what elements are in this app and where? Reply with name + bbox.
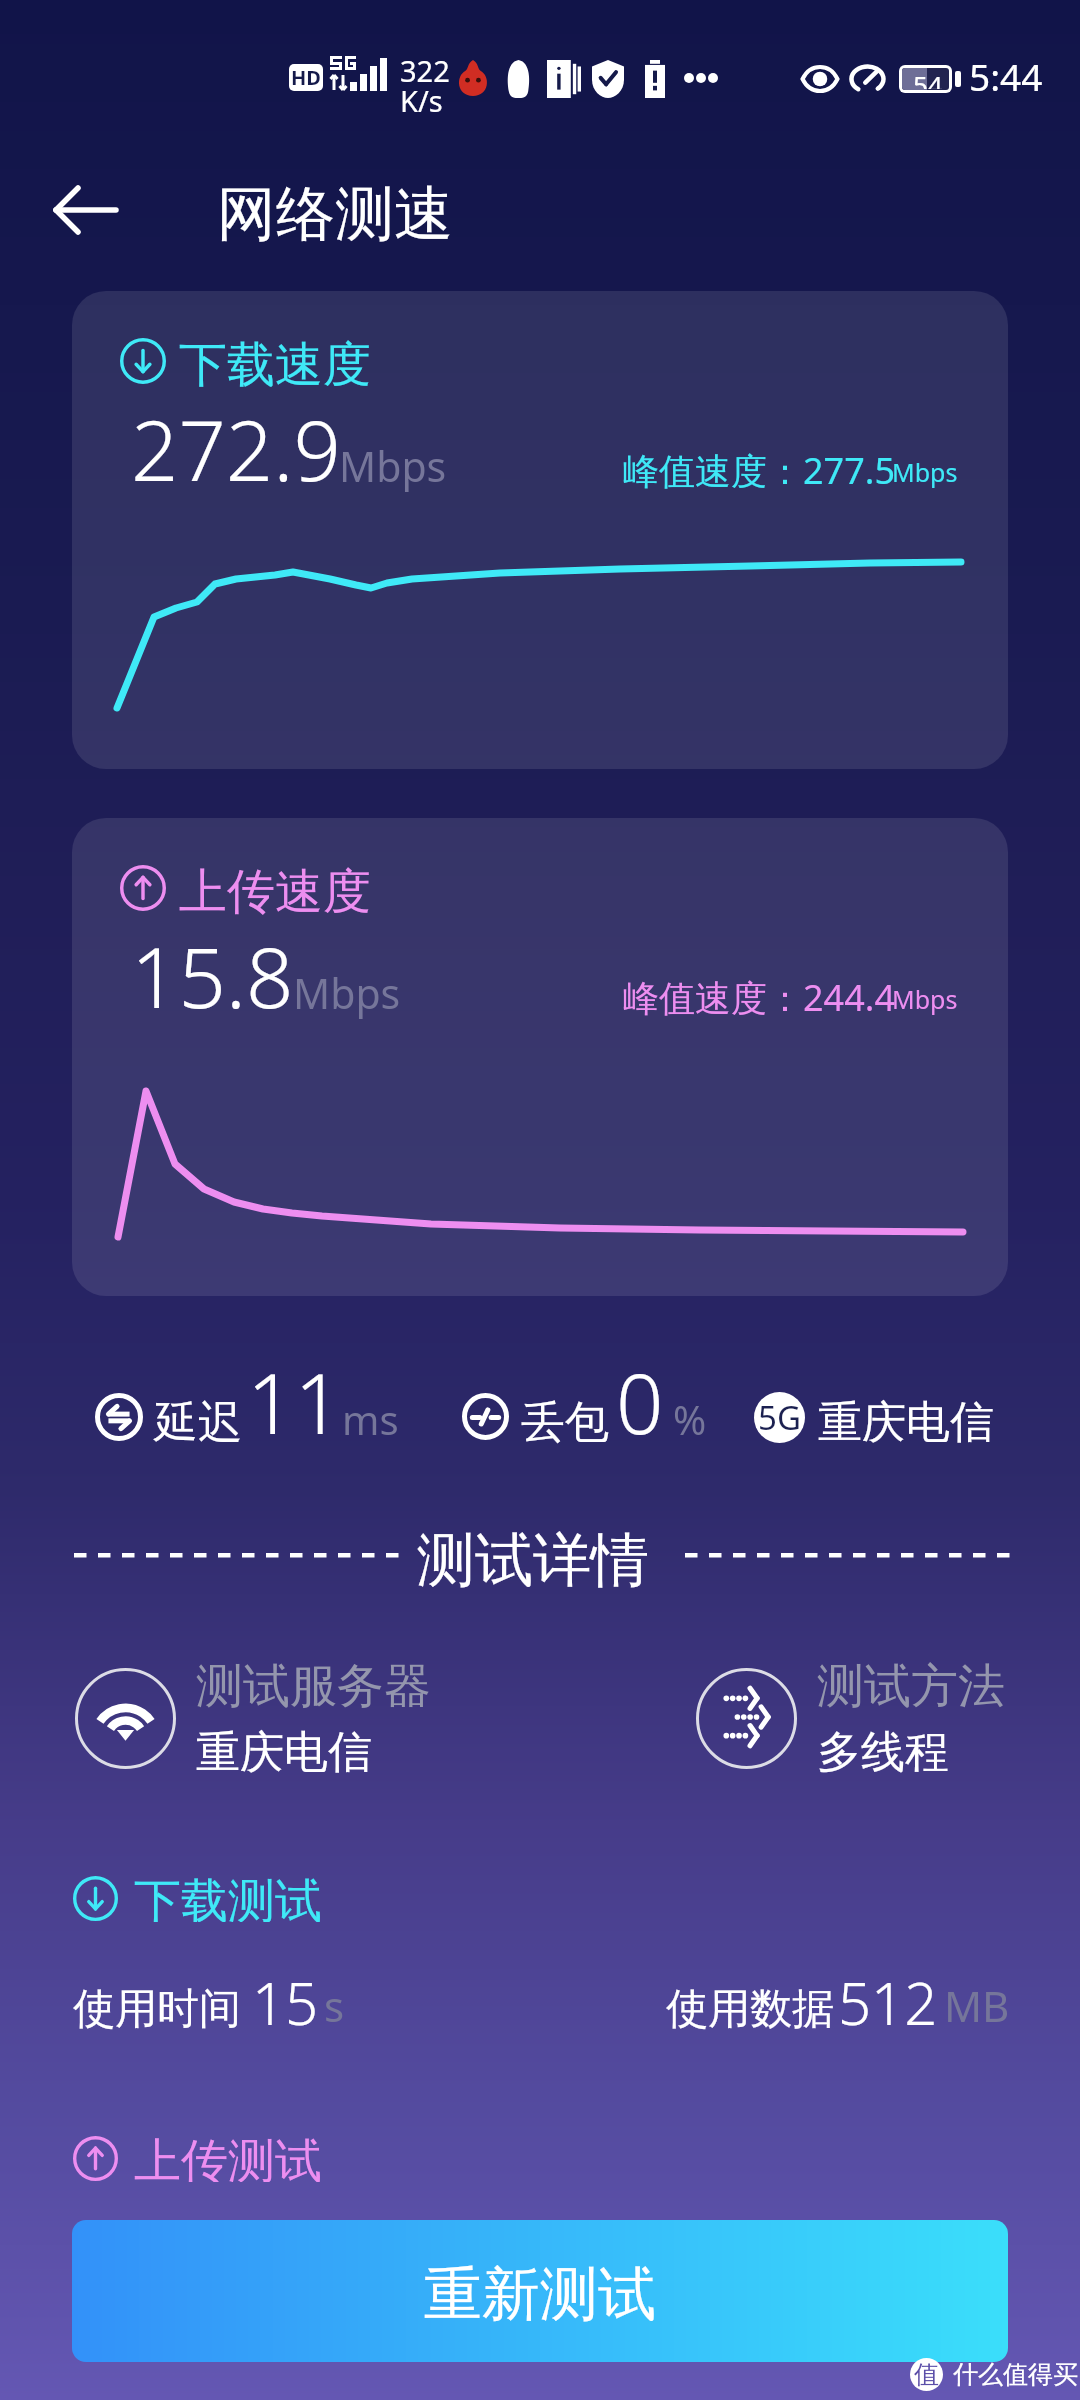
button[interactable]: 测试方法 xyxy=(696,1657,1005,1780)
staticText: 322 xyxy=(400,51,450,90)
button[interactable]: Back xyxy=(48,172,124,248)
staticText: MB xyxy=(944,1977,1010,2034)
staticText: 5:44 xyxy=(969,51,1043,101)
staticText: 测试详情 xyxy=(417,1524,649,1597)
staticText: % xyxy=(673,1392,707,1446)
staticText: 重庆电信 xyxy=(196,1725,372,1780)
staticText: Mbps xyxy=(293,965,401,1021)
button[interactable]: 上传速度 xyxy=(72,818,1008,1296)
staticText: 使用数据 xyxy=(666,1983,834,2036)
staticText: 15.8 xyxy=(131,919,294,1032)
staticText: 512 xyxy=(838,1963,938,2042)
staticText: Mbps xyxy=(892,455,958,489)
button[interactable]: 上传测试 xyxy=(73,2133,322,2183)
staticText: K/s xyxy=(400,81,443,120)
staticText: 上传速度 xyxy=(179,862,371,922)
staticText: 下载测试 xyxy=(134,1872,322,1922)
staticText: 重庆电信 xyxy=(818,1395,994,1450)
staticText: 下载速度 xyxy=(179,335,371,395)
staticText: 0 xyxy=(616,1345,664,1458)
staticText: 多线程 xyxy=(817,1725,949,1780)
staticText: 丢包 xyxy=(521,1395,609,1450)
staticText: 272.9 xyxy=(131,392,341,505)
staticText: ms xyxy=(342,1392,399,1446)
staticText: 峰值速度：277.5 xyxy=(623,446,896,495)
staticText: HD xyxy=(291,64,321,91)
staticText: 测试服务器 xyxy=(196,1657,431,1716)
button[interactable]: 测试服务器 xyxy=(75,1657,431,1780)
staticText: 重新测试 xyxy=(424,2258,656,2331)
button[interactable]: 重新测试 xyxy=(72,2220,1008,2362)
staticText: 网络测速 xyxy=(217,177,453,251)
staticText: 峰值速度：244.4 xyxy=(623,973,896,1022)
button[interactable]: 下载测试 xyxy=(73,1873,322,1923)
staticText: Mbps xyxy=(339,438,447,494)
staticText: 上传测试 xyxy=(134,2132,322,2182)
staticText: 值 xyxy=(914,2359,939,2390)
staticText: 测试方法 xyxy=(817,1657,1005,1716)
staticText: 11 xyxy=(247,1345,342,1458)
staticText: 15 xyxy=(252,1963,319,2042)
staticText: Mbps xyxy=(892,982,958,1016)
staticText: 54 xyxy=(913,67,943,89)
staticText: s xyxy=(324,1977,345,2034)
staticText: 使用时间 xyxy=(73,1983,241,2036)
staticText: 什么值得买 xyxy=(953,2359,1078,2390)
staticText: 延迟 xyxy=(154,1395,242,1450)
staticText: 5G xyxy=(758,1395,801,1440)
button[interactable]: 下载速度 xyxy=(72,291,1008,769)
